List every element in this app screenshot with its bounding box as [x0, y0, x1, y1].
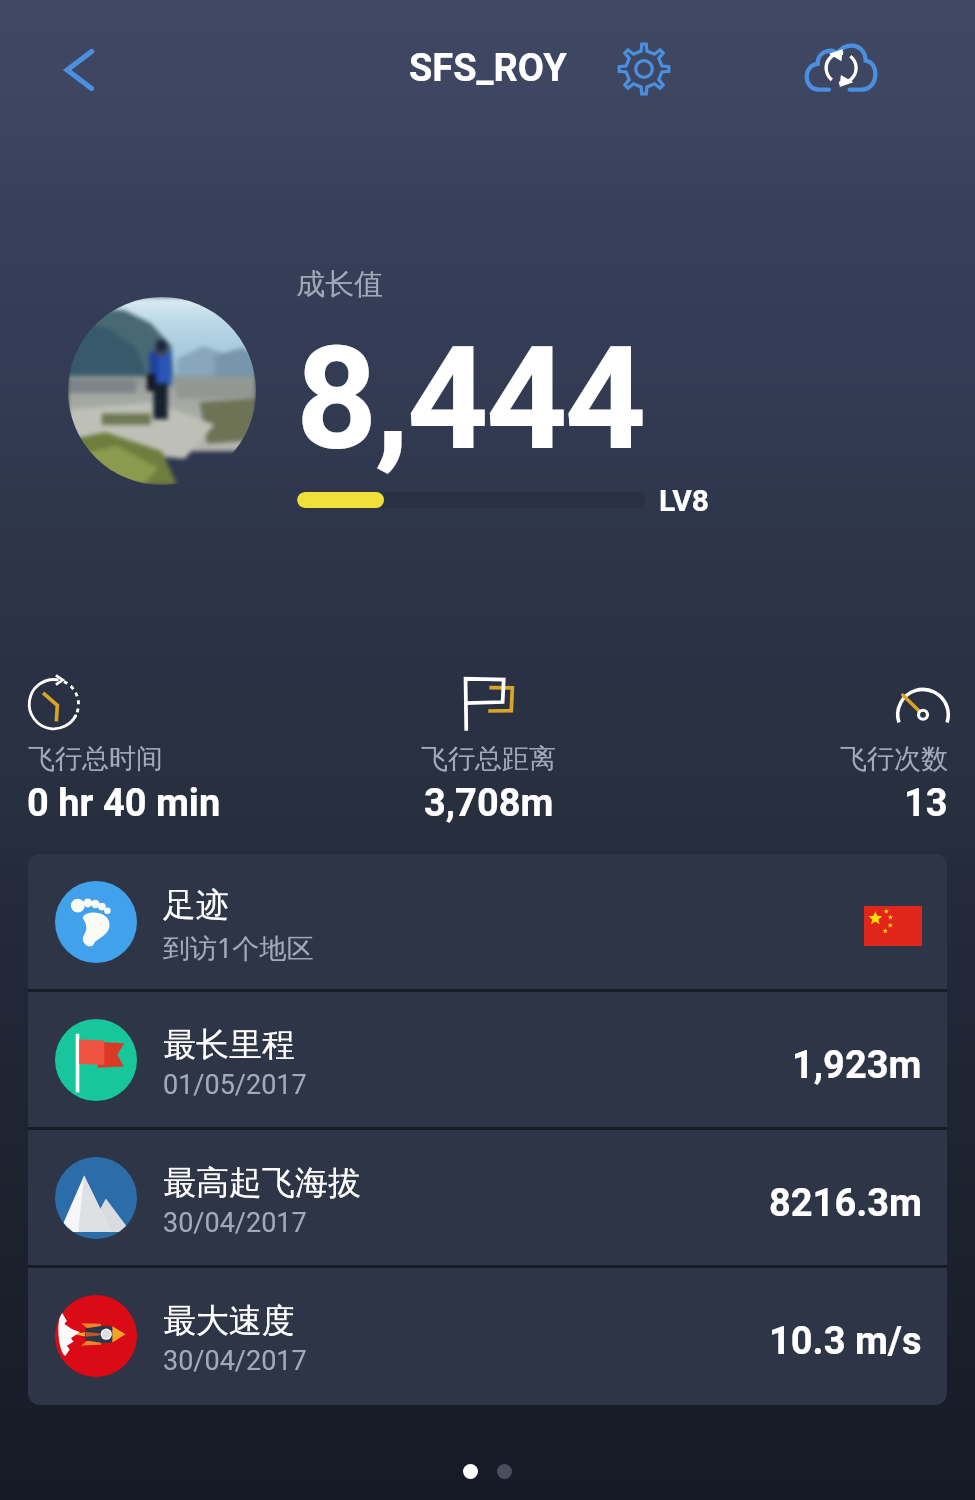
staticText: 飞行总时间 — [28, 742, 163, 776]
staticText: 13 — [904, 781, 948, 826]
button[interactable]: SFS_ROY — [409, 46, 567, 91]
button[interactable]: 最长里程 — [28, 992, 947, 1127]
staticText: 飞行总距离 — [421, 742, 556, 776]
button[interactable]: 飞行总时间 — [20, 660, 280, 830]
button[interactable]: Sync — [791, 16, 887, 112]
staticText: 10.3 m/s — [769, 1319, 922, 1364]
staticText: 0 hr 40 min — [27, 781, 221, 826]
staticText: 最高起飞海拔 — [163, 1162, 361, 1204]
staticText: 1,923m — [792, 1043, 922, 1088]
staticText: 8,444 — [296, 316, 644, 482]
button[interactable]: 飞行次数 — [700, 660, 950, 830]
button[interactable]: 最高起飞海拔 — [28, 1130, 947, 1265]
staticText: 成长值 — [296, 266, 383, 303]
staticText: 30/04/2017 — [163, 1345, 307, 1377]
staticText: 30/04/2017 — [163, 1207, 307, 1239]
staticText: 到访1个地区 — [163, 929, 314, 966]
button[interactable]: Settings — [607, 32, 681, 106]
button[interactable]: 最大速度 — [28, 1268, 947, 1403]
staticText: LV8 — [659, 483, 710, 518]
staticText: 最长里程 — [163, 1024, 295, 1066]
staticText: SFS_ROY — [409, 46, 567, 91]
button[interactable]: 足迹 — [28, 854, 947, 989]
staticText: 最大速度 — [163, 1300, 295, 1342]
staticText: 飞行次数 — [840, 742, 948, 776]
staticText: 01/05/2017 — [163, 1069, 307, 1101]
staticText: 8216.3m — [769, 1181, 922, 1226]
staticText: 足迹 — [163, 884, 229, 926]
button[interactable]: 飞行总距离 — [415, 660, 675, 830]
button[interactable]: Back — [42, 33, 116, 107]
staticText: 3,708m — [424, 781, 554, 826]
